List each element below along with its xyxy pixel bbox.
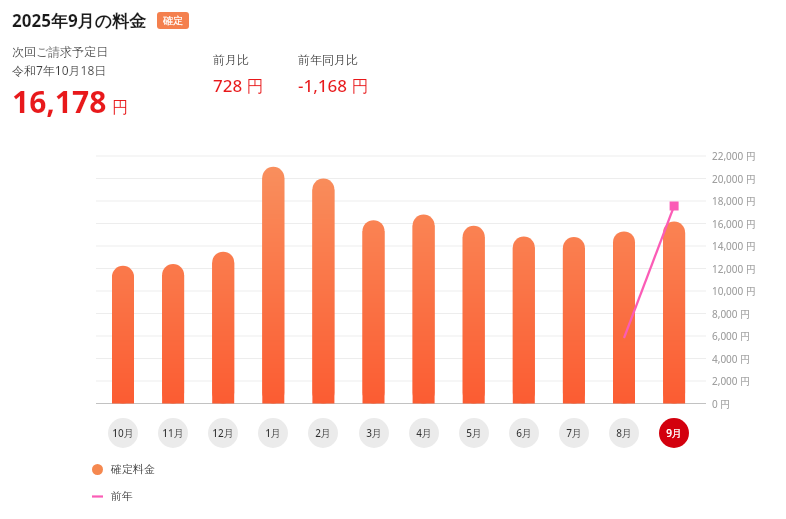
staticText: 0 円 (712, 397, 731, 411)
staticText: 2月 (315, 426, 331, 440)
staticText: 14,000 円 (712, 239, 756, 253)
button[interactable]: 2月 (308, 418, 338, 448)
button[interactable]: 3月 (359, 418, 389, 448)
staticText: 8月 (616, 426, 632, 440)
staticText: 16,178 (12, 81, 107, 122)
staticText: 18,000 円 (712, 194, 756, 208)
staticText: 22,000 円 (712, 149, 756, 163)
button[interactable]: 確定料金 (92, 462, 155, 476)
staticText: 前月比 (213, 52, 249, 67)
staticText: 確定 (163, 14, 183, 27)
staticText: 10,000 円 (712, 284, 756, 298)
staticText: 4月 (416, 426, 432, 440)
button[interactable]: 5月 (459, 418, 489, 448)
button[interactable]: 前年 (92, 489, 133, 503)
button[interactable]: 1月 (258, 418, 288, 448)
staticText: 728 円 (213, 74, 264, 97)
staticText: 3月 (366, 426, 382, 440)
staticText: 9月 (666, 426, 682, 440)
staticText: 6月 (516, 426, 532, 440)
button[interactable]: 10月 (108, 418, 138, 448)
staticText: -1,168 円 (298, 74, 369, 97)
staticText: 円 (112, 98, 128, 118)
staticText: 2,000 円 (712, 374, 751, 388)
staticText: 7月 (566, 426, 582, 440)
button[interactable]: 12月 (208, 418, 238, 448)
staticText: 10月 (112, 426, 134, 440)
staticText: 16,000 円 (712, 217, 756, 231)
button[interactable]: 11月 (158, 418, 188, 448)
button[interactable]: 6月 (509, 418, 539, 448)
staticText: 20,000 円 (712, 172, 756, 186)
staticText: 6,000 円 (712, 329, 751, 343)
staticText: 12月 (212, 426, 234, 440)
staticText: 1月 (265, 426, 281, 440)
button[interactable]: 確定 (157, 12, 189, 29)
staticText: 2025年9月の料金 (12, 9, 147, 32)
staticText: 前年同月比 (298, 52, 358, 67)
button[interactable]: 7月 (559, 418, 589, 448)
staticText: 前年 (111, 489, 133, 503)
staticText: 4,000 円 (712, 352, 751, 366)
staticText: 次回ご請求予定日 (12, 44, 109, 59)
button[interactable]: 4月 (409, 418, 439, 448)
staticText: 8,000 円 (712, 307, 751, 321)
staticText: 令和7年10月18日 (12, 62, 107, 78)
staticText: 確定料金 (111, 462, 155, 476)
button[interactable]: 8月 (609, 418, 639, 448)
button[interactable]: 9月 (659, 418, 689, 448)
staticText: 11月 (162, 426, 184, 440)
staticText: 5月 (466, 426, 482, 440)
staticText: 12,000 円 (712, 262, 756, 276)
